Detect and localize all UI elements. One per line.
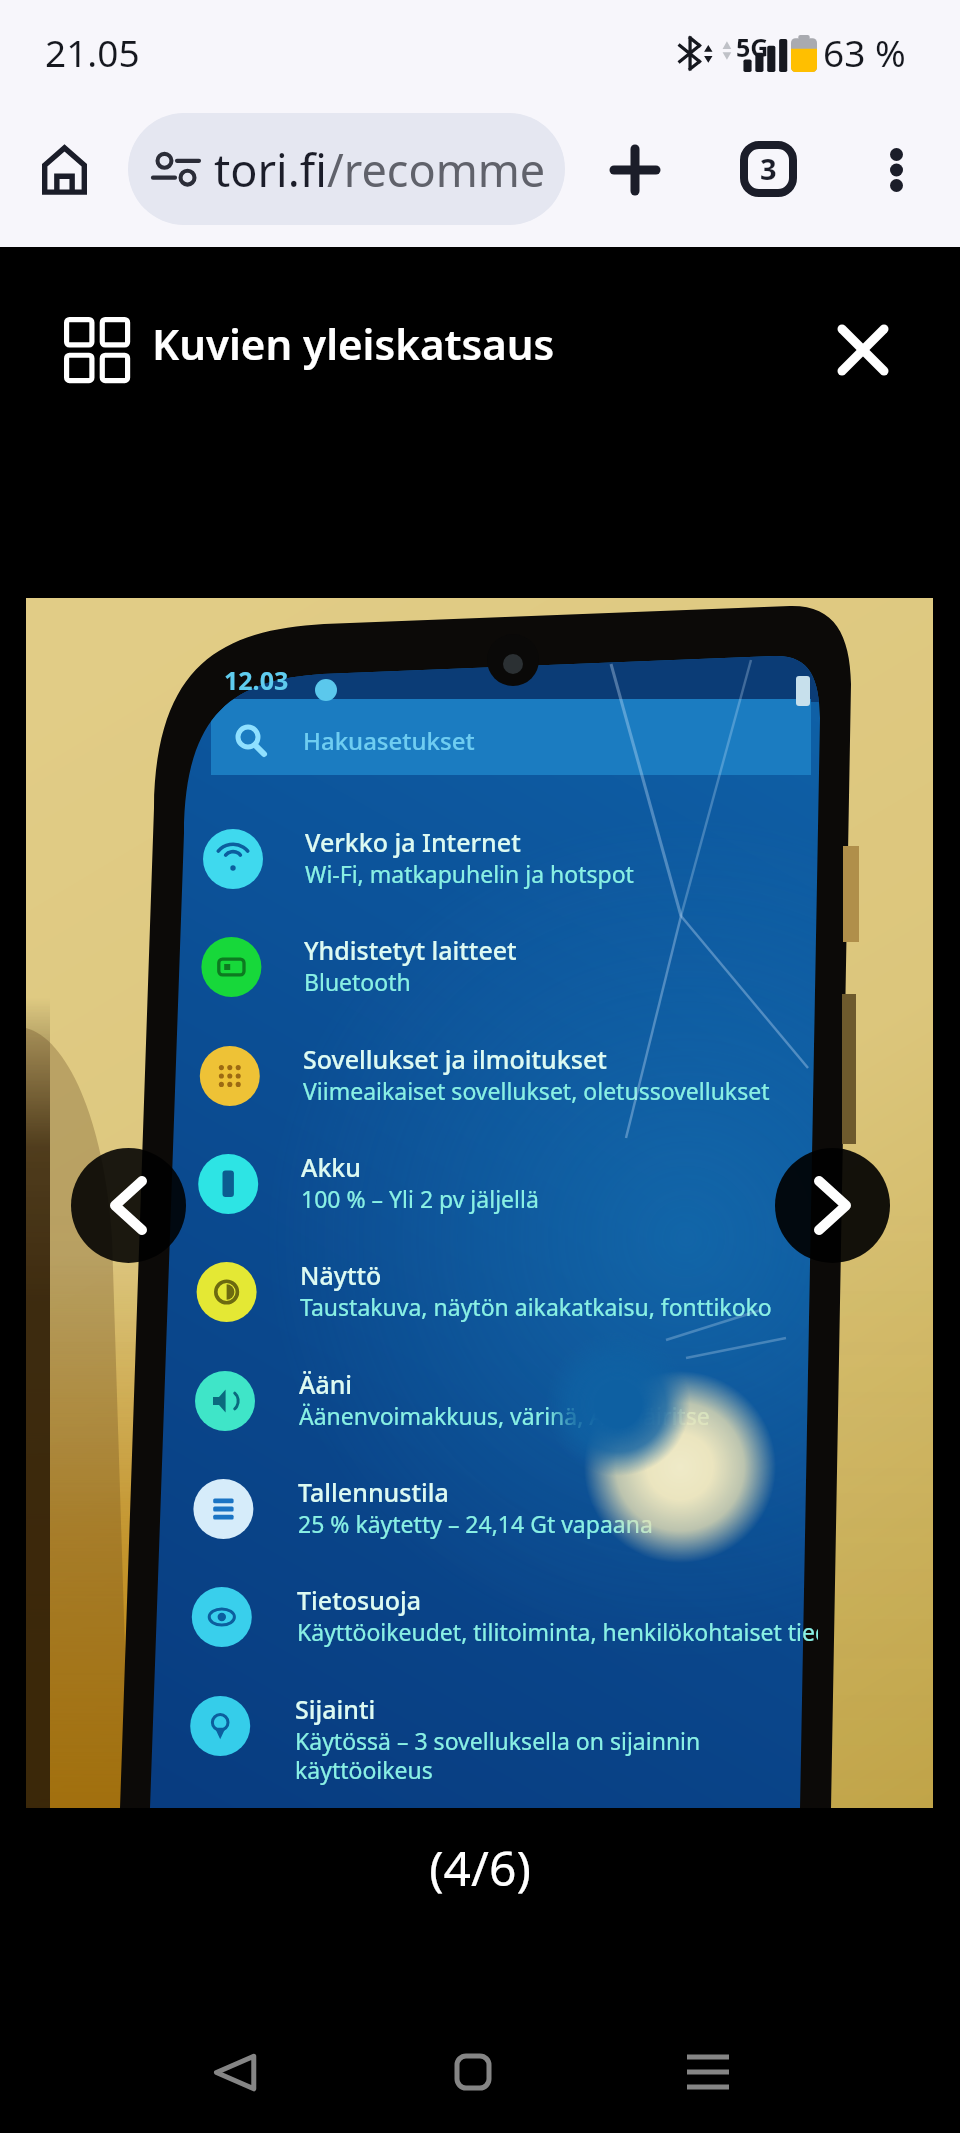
staticText: 5G <box>736 30 769 64</box>
staticText: Äänenvoimakkuus, värinä, Älä häiritse <box>299 1400 710 1431</box>
staticText: tori.fi <box>214 139 327 200</box>
staticText: Tallennustila <box>298 1475 449 1509</box>
staticText: Sijainti <box>295 1692 376 1726</box>
staticText: Wi-Fi, matkapuhelin ja hotspot <box>305 858 634 889</box>
staticText: 100 % – Yli 2 pv jäljellä <box>301 1183 539 1214</box>
staticText: 25 % käytetty – 24,14 Gt vapaana <box>298 1508 653 1539</box>
button[interactable]: More options <box>858 132 934 208</box>
staticText: Bluetooth <box>304 966 411 997</box>
button[interactable]: Home <box>426 2025 520 2119</box>
staticText: Taustakuva, näytön aikakatkaisu, fonttik… <box>300 1291 772 1322</box>
button[interactable]: Previous image <box>71 1148 186 1263</box>
staticText: Käyttöoikeudet, tilitoiminta, henkilökoh… <box>297 1616 818 1647</box>
staticText: 63 % <box>823 27 906 77</box>
staticText: Sovellukset ja ilmoitukset <box>303 1042 607 1076</box>
staticText: 12.03 <box>224 663 289 697</box>
staticText: Näyttö <box>300 1258 382 1292</box>
button[interactable]: tori.fi <box>128 113 565 225</box>
button[interactable]: Close <box>820 307 906 393</box>
staticText: Yhdistetyt laitteet <box>304 933 517 967</box>
staticText: Käytössä – 3 sovelluksella on sijainnin … <box>295 1725 701 1786</box>
staticText: Hakuasetukset <box>303 724 475 757</box>
button[interactable]: New tab <box>597 132 673 208</box>
staticText: 3 <box>760 149 777 188</box>
button[interactable]: Home <box>29 135 99 205</box>
button[interactable]: Tabs <box>730 131 806 207</box>
staticText: Akku <box>301 1150 362 1184</box>
button[interactable]: Recents <box>661 2025 755 2119</box>
staticText: Tietosuoja <box>297 1583 422 1617</box>
button[interactable]: Next image <box>775 1148 890 1263</box>
staticText: Kuvien yleiskatsaus <box>152 315 555 372</box>
staticText: /recomme <box>327 139 546 200</box>
button[interactable]: Grid view <box>50 303 138 391</box>
staticText: Ääni <box>299 1367 353 1401</box>
staticText: 21.05 <box>45 27 140 77</box>
staticText: (4/6) <box>0 1835 960 1900</box>
button[interactable]: Back <box>187 2025 281 2119</box>
staticText: Verkko ja Internet <box>305 825 521 859</box>
staticText: Viimeaikaiset sovellukset, oletussovellu… <box>303 1075 770 1106</box>
